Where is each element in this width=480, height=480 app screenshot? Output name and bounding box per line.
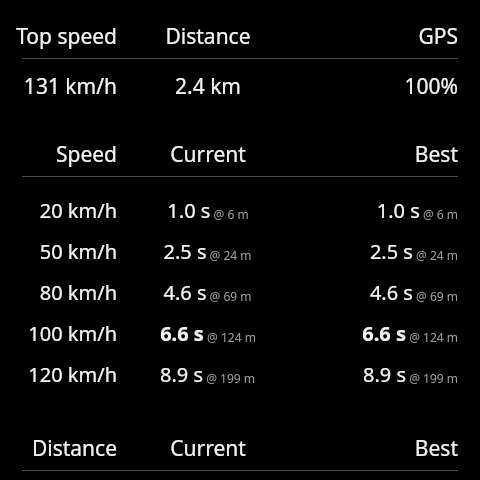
staticText: Speed bbox=[55, 140, 117, 169]
staticText: 4.6 s @ 69 m bbox=[369, 279, 458, 306]
staticText: Best bbox=[414, 140, 458, 169]
button[interactable]: 50 km/h bbox=[0, 231, 480, 272]
button[interactable]: 120 km/h bbox=[0, 354, 480, 395]
staticText: Distance bbox=[31, 434, 117, 463]
staticText: Top speed bbox=[16, 22, 117, 51]
staticText: 50 km/h bbox=[39, 238, 117, 265]
staticText: 131 km/h bbox=[23, 72, 117, 101]
staticText: 120 km/h bbox=[28, 361, 117, 388]
staticText: 6.6 s @ 124 m bbox=[362, 320, 458, 347]
button[interactable]: Speed bbox=[0, 139, 480, 169]
staticText: 1.0 s @ 6 m bbox=[376, 197, 458, 224]
staticText: 2.5 s @ 24 m bbox=[163, 238, 252, 265]
staticText: 100 km/h bbox=[28, 320, 117, 347]
button[interactable]: 20 km/h bbox=[0, 190, 480, 231]
staticText: GPS bbox=[418, 22, 458, 51]
button[interactable]: 131 km/h bbox=[0, 71, 480, 101]
staticText: 1.0 s @ 6 m bbox=[167, 197, 249, 224]
button[interactable]: Distance bbox=[0, 433, 480, 463]
staticText: Distance bbox=[165, 22, 251, 51]
staticText: 2.4 km bbox=[175, 72, 241, 101]
button[interactable]: 80 km/h bbox=[0, 272, 480, 313]
staticText: 8.9 s @ 199 m bbox=[160, 361, 255, 388]
staticText: 6.6 s @ 124 m bbox=[160, 320, 256, 347]
staticText: Best bbox=[414, 434, 458, 463]
button[interactable]: 100 km/h bbox=[0, 313, 480, 354]
staticText: 100% bbox=[404, 72, 458, 101]
staticText: 80 km/h bbox=[39, 279, 117, 306]
staticText: 20 km/h bbox=[39, 197, 117, 224]
staticText: 8.9 s @ 199 m bbox=[363, 361, 458, 388]
staticText: Current bbox=[170, 434, 246, 463]
staticText: 4.6 s @ 69 m bbox=[163, 279, 252, 306]
button[interactable]: Top speed bbox=[0, 20, 480, 52]
staticText: 2.5 s @ 24 m bbox=[369, 238, 458, 265]
staticText: Current bbox=[170, 140, 246, 169]
